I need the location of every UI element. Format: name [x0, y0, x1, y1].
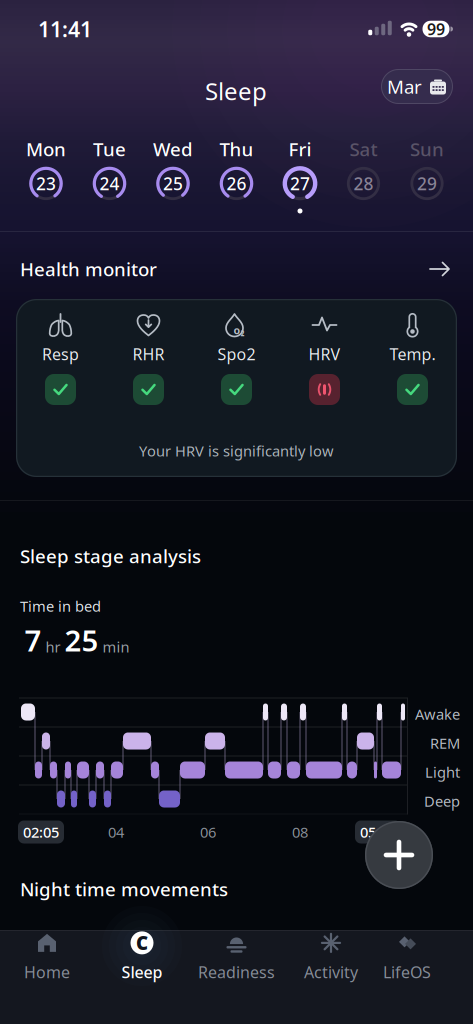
staticText: Your HRV is significantly low [139, 441, 334, 460]
staticText: Sun [410, 137, 444, 161]
staticText: 25 [163, 172, 183, 195]
staticText: 29 [417, 172, 437, 195]
staticText: Sleep stage analysis [20, 544, 201, 568]
staticText: Sleep [121, 961, 162, 983]
staticText: 7 [24, 620, 41, 659]
staticText: 02:05 [23, 822, 59, 842]
staticText: LifeOS [383, 961, 431, 983]
staticText: REM [430, 733, 460, 753]
staticText: hr [45, 637, 60, 656]
staticText: Wed [153, 137, 193, 161]
staticText: 08 [292, 822, 308, 842]
staticText: Home [24, 961, 70, 983]
button[interactable]: LifeOS [362, 931, 452, 983]
staticText: Sleep [205, 75, 267, 107]
staticText: C [136, 930, 148, 955]
button[interactable]: Fri [281, 140, 319, 213]
staticText: Night time movements [20, 877, 228, 901]
staticText: Activity [304, 961, 358, 983]
button[interactable]: Mar [381, 69, 453, 104]
staticText: Mon [26, 137, 66, 161]
staticText: 26 [226, 172, 246, 195]
staticText: Mar [387, 74, 422, 99]
staticText: Readiness [198, 961, 275, 983]
button[interactable]: Add [365, 821, 433, 889]
button[interactable]: Sat [344, 140, 382, 213]
staticText: Awake [415, 704, 460, 724]
staticText: 25 [64, 620, 98, 659]
staticText: Light [425, 762, 460, 782]
staticText: o₂ [233, 323, 244, 337]
staticText: Thu [219, 137, 253, 161]
button[interactable]: C [97, 931, 187, 983]
button[interactable]: Mon [26, 140, 66, 213]
staticText: 28 [353, 172, 373, 195]
staticText: 05:05 [360, 822, 396, 842]
button[interactable]: Readiness [191, 931, 281, 983]
staticText: Sat [349, 137, 377, 161]
staticText: Deep [424, 791, 460, 811]
staticText: Health monitor [20, 257, 157, 281]
staticText: Fri [288, 137, 311, 161]
button[interactable]: Tue [90, 140, 128, 213]
button[interactable]: Activity [286, 931, 376, 983]
staticText: 04 [108, 822, 124, 842]
button[interactable]: Thu [217, 140, 255, 213]
staticText: Tue [93, 137, 126, 161]
staticText: 27 [290, 172, 310, 195]
staticText: 23 [36, 172, 56, 195]
staticText: RHR [132, 343, 164, 365]
button[interactable]: Open health monitor [429, 261, 451, 277]
button[interactable]: Wed [153, 140, 193, 213]
button[interactable]: Sun [408, 140, 446, 213]
staticText: min [102, 637, 129, 656]
staticText: Resp [42, 343, 79, 365]
staticText: 06 [200, 822, 216, 842]
staticText: 24 [99, 172, 119, 195]
staticText: 99 [427, 18, 445, 40]
button[interactable]: Home [2, 931, 92, 983]
staticText: Time in bed [20, 596, 101, 616]
staticText: Spo2 [217, 343, 255, 365]
staticText: 11:41 [38, 15, 92, 43]
staticText: Temp. [389, 343, 435, 365]
staticText: HRV [308, 343, 340, 365]
